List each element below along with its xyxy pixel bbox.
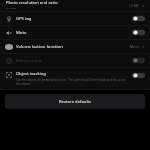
button[interactable]: Restore defaults — [5, 94, 145, 109]
staticText: 12 MP — [129, 3, 139, 8]
button[interactable]: Toggle — [132, 72, 145, 79]
button[interactable]: Mute — [0, 26, 150, 39]
button[interactable]: Toggle — [132, 57, 145, 64]
staticText: Tap the object on preview focus on. The … — [16, 78, 129, 86]
staticText: Photo resolution and ratio — [6, 0, 58, 6]
button[interactable]: GPS tag — [0, 12, 150, 25]
staticText: Restore defaults — [59, 99, 92, 105]
staticText: Volume button function — [16, 44, 63, 50]
button[interactable]: Toggle — [132, 15, 145, 22]
button[interactable]: Photo resolution and ratio — [0, 0, 150, 11]
staticText: GPS tag — [16, 16, 32, 22]
staticText: Mute — [16, 30, 27, 36]
staticText: Beauty mode — [16, 58, 43, 64]
button[interactable]: Volume button function — [0, 40, 150, 53]
staticText: 12 MP — [6, 7, 16, 9]
button[interactable]: Object tracking — [0, 68, 150, 89]
button[interactable]: Beauty mode — [0, 54, 150, 67]
staticText: Object tracking — [16, 71, 46, 77]
button[interactable]: Toggle — [132, 29, 145, 36]
staticText: Mute — [130, 44, 139, 49]
